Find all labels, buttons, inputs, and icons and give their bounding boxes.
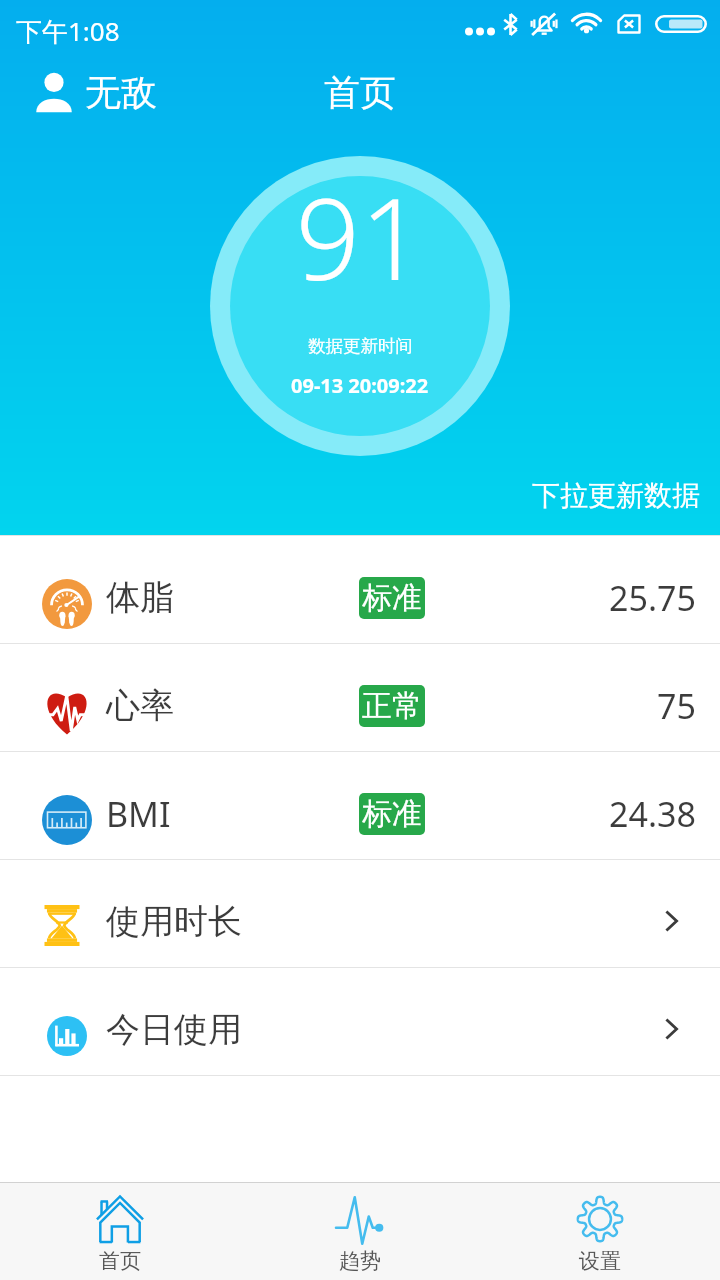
staticText: 今日使用 — [106, 1008, 242, 1051]
staticText: 无敌 — [85, 70, 157, 115]
staticText: 体脂 — [106, 576, 174, 619]
staticText: 75 — [657, 683, 696, 729]
staticText: 标准 — [362, 579, 422, 617]
staticText: 首页 — [99, 1248, 141, 1274]
staticText: 下午1:08 — [16, 13, 120, 49]
staticText: 09-13 20:09:22 — [291, 372, 429, 399]
staticText: 设置 — [579, 1248, 621, 1274]
button[interactable]: 无敌 — [0, 60, 171, 124]
staticText: 25.75 — [609, 575, 696, 621]
button[interactable]: 设置 — [480, 1183, 720, 1280]
staticText: 正常 — [362, 687, 422, 725]
staticText: 心率 — [106, 684, 174, 727]
button[interactable]: BMI — [0, 752, 720, 859]
button[interactable]: 今日使用 — [0, 968, 720, 1075]
staticText: 24.38 — [609, 791, 696, 837]
staticText: 下拉更新数据 — [532, 478, 700, 513]
staticText: 首页 — [324, 70, 396, 115]
button[interactable]: 使用时长 — [0, 860, 720, 967]
staticText: 标准 — [362, 795, 422, 833]
staticText: 数据更新时间 — [308, 335, 413, 357]
staticText: 91 — [295, 159, 425, 313]
staticText: BMI — [106, 791, 171, 837]
button[interactable]: 心率 — [0, 644, 720, 751]
staticText: 趋势 — [339, 1248, 381, 1274]
button[interactable]: 首页 — [0, 1183, 240, 1280]
staticText: 使用时长 — [106, 900, 242, 943]
button[interactable]: 趋势 — [240, 1183, 480, 1280]
button[interactable]: 体脂 — [0, 536, 720, 643]
